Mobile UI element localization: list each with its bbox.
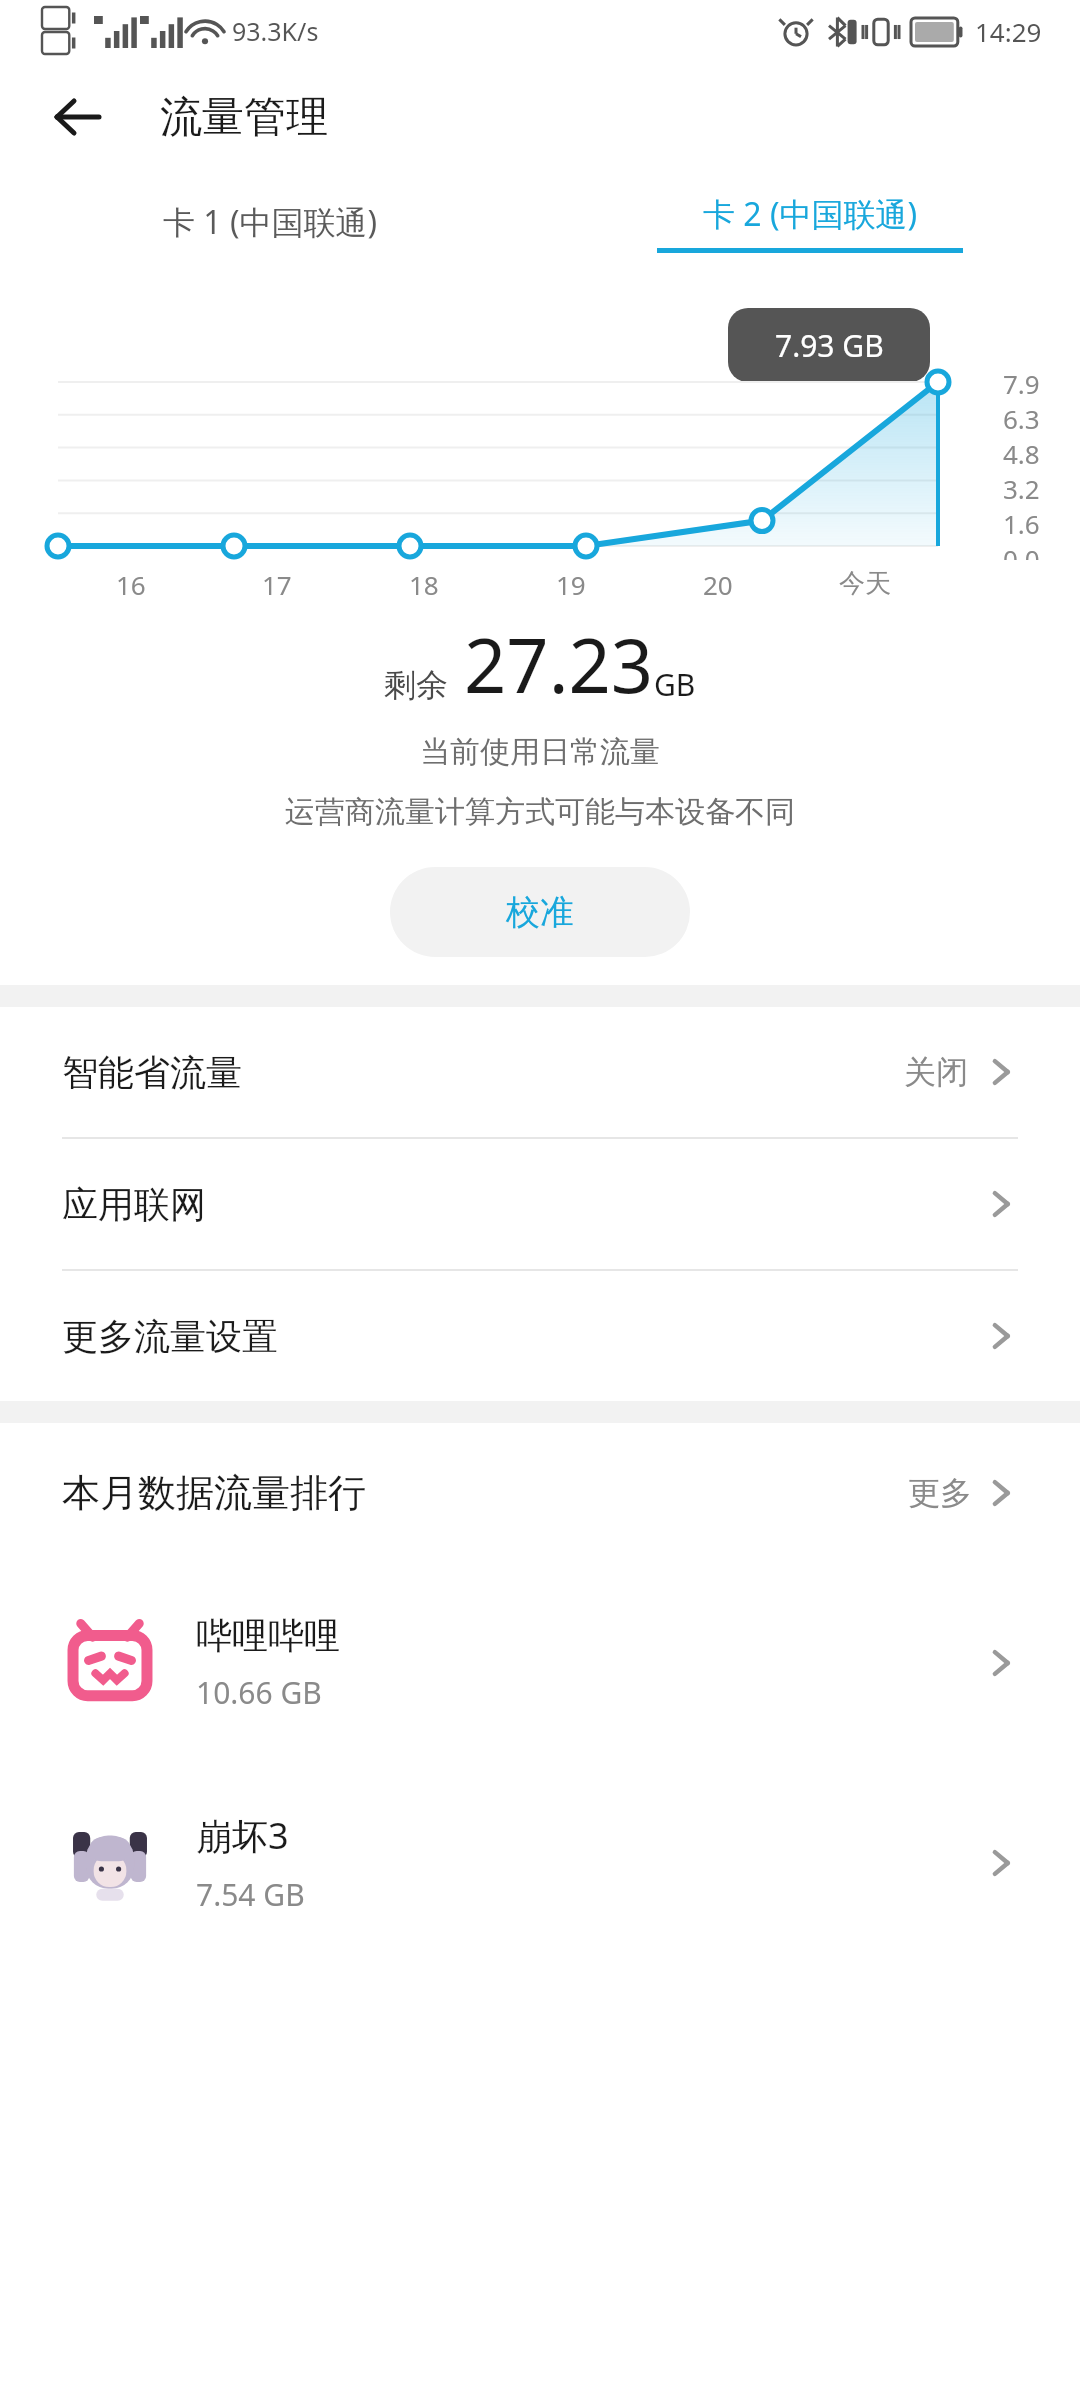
staticText: 16: [116, 567, 146, 602]
staticText: 7.54 GB: [196, 1874, 305, 1915]
button[interactable]: 崩坏3: [62, 1763, 1018, 1963]
staticText: GB: [654, 664, 696, 705]
staticText: 更多: [908, 1473, 972, 1513]
button[interactable]: 智能省流量: [0, 1007, 1080, 1139]
staticText: 19: [556, 567, 586, 602]
staticText: 校准: [506, 891, 574, 934]
button[interactable]: 卡 2 (中国联通): [540, 172, 1080, 272]
button[interactable]: 应用联网: [0, 1139, 1080, 1271]
button[interactable]: 哔哩哔哩: [62, 1563, 1018, 1763]
staticText: 7.9: [1003, 366, 1040, 401]
button[interactable]: 卡 1 (中国联通): [0, 172, 540, 272]
button[interactable]: 本月数据流量排行: [62, 1423, 1018, 1563]
staticText: 哔哩哔哩: [196, 1613, 340, 1658]
staticText: 4.8: [1003, 436, 1040, 471]
staticText: 应用联网: [62, 1182, 206, 1227]
button[interactable]: 校准: [390, 867, 690, 957]
staticText: 1.6: [1003, 506, 1040, 541]
staticText: 7.93 GB: [775, 325, 884, 366]
staticText: 18: [409, 567, 439, 602]
staticText: 10.66 GB: [196, 1672, 322, 1713]
button[interactable]: Back: [42, 81, 114, 153]
staticText: 流量管理: [160, 91, 328, 144]
staticText: 更多流量设置: [62, 1314, 278, 1359]
staticText: 20: [703, 567, 733, 602]
staticText: 14:29: [975, 14, 1042, 49]
staticText: 卡 1 (中国联通): [163, 200, 378, 244]
staticText: 27.23: [464, 614, 654, 715]
staticText: 卡 2 (中国联通): [703, 192, 918, 236]
staticText: 崩坏3: [196, 1811, 289, 1860]
staticText: 3.2: [1003, 471, 1040, 506]
staticText: 6.3: [1003, 401, 1040, 436]
staticText: 今天: [839, 567, 891, 600]
staticText: 当前使用日常流量: [420, 733, 660, 771]
staticText: 剩余: [384, 665, 448, 705]
staticText: 关闭: [904, 1052, 968, 1092]
button[interactable]: 更多流量设置: [0, 1271, 1080, 1401]
staticText: 智能省流量: [62, 1050, 242, 1095]
staticText: 17: [262, 567, 292, 602]
staticText: 运营商流量计算方式可能与本设备不同: [285, 793, 795, 831]
staticText: 93.3K/s: [232, 14, 319, 48]
staticText: 本月数据流量排行: [62, 1469, 366, 1517]
staticText: 0.0: [1003, 541, 1040, 560]
